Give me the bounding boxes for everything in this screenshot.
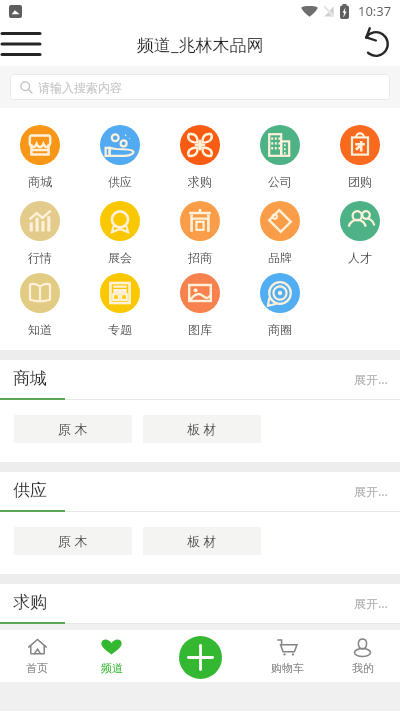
- staticText: 购物车: [271, 661, 304, 675]
- button[interactable]: 展开...: [354, 595, 388, 611]
- button[interactable]: 团购: [320, 125, 400, 189]
- staticText: 频道: [101, 661, 123, 675]
- staticText: 行情: [28, 250, 52, 265]
- staticText: 展会: [108, 250, 132, 265]
- button[interactable]: 展会: [80, 201, 160, 265]
- staticText: 知道: [28, 322, 52, 337]
- button[interactable]: 招商: [160, 201, 240, 265]
- staticText: 专题: [108, 322, 132, 337]
- button[interactable]: 频道: [74, 630, 149, 682]
- staticText: 供应: [13, 480, 47, 501]
- staticText: 频道_兆林木品网: [137, 33, 264, 56]
- button[interactable]: 品牌: [240, 201, 320, 265]
- button[interactable]: 原 木: [14, 415, 132, 443]
- button[interactable]: 板 材: [143, 415, 261, 443]
- staticText: 10:37: [358, 2, 392, 20]
- button[interactable]: 我的: [325, 630, 400, 682]
- staticText: 团购: [348, 174, 372, 189]
- button[interactable]: 公司: [240, 125, 320, 189]
- button[interactable]: 展开...: [354, 483, 388, 499]
- staticText: 原 木: [58, 532, 88, 550]
- button[interactable]: 商圈: [240, 273, 320, 337]
- button[interactable]: 知道: [0, 273, 80, 337]
- staticText: 供应: [108, 174, 132, 189]
- button[interactable]: 供应: [80, 125, 160, 189]
- button[interactable]: 板 材: [143, 527, 261, 555]
- button[interactable]: 专题: [80, 273, 160, 337]
- button[interactable]: Menu: [0, 22, 48, 66]
- button[interactable]: 求购: [160, 125, 240, 189]
- staticText: 原 木: [58, 420, 88, 438]
- staticText: 招商: [188, 250, 212, 265]
- staticText: 商城: [13, 368, 47, 389]
- staticText: 请输入搜索内容: [38, 80, 122, 95]
- staticText: 公司: [268, 174, 292, 189]
- button[interactable]: Refresh: [356, 22, 400, 66]
- button[interactable]: 首页: [0, 630, 74, 682]
- button[interactable]: 请输入搜索内容: [10, 74, 390, 100]
- staticText: 人才: [348, 250, 372, 265]
- button[interactable]: 展开...: [354, 371, 388, 387]
- staticText: 我的: [352, 661, 374, 675]
- button[interactable]: 行情: [0, 201, 80, 265]
- button[interactable]: Add: [179, 636, 222, 679]
- staticText: 商圈: [268, 322, 292, 337]
- staticText: 板 材: [187, 532, 217, 550]
- button[interactable]: 原 木: [14, 527, 132, 555]
- staticText: 图库: [188, 322, 212, 337]
- staticText: 求购: [188, 174, 212, 189]
- button[interactable]: 购物车: [250, 630, 325, 682]
- button[interactable]: 人才: [320, 201, 400, 265]
- staticText: 商城: [28, 174, 52, 189]
- staticText: 求购: [13, 592, 47, 613]
- staticText: 板 材: [187, 420, 217, 438]
- button[interactable]: 商城: [0, 125, 80, 189]
- staticText: 品牌: [268, 250, 292, 265]
- staticText: 首页: [26, 661, 48, 675]
- button[interactable]: 图库: [160, 273, 240, 337]
